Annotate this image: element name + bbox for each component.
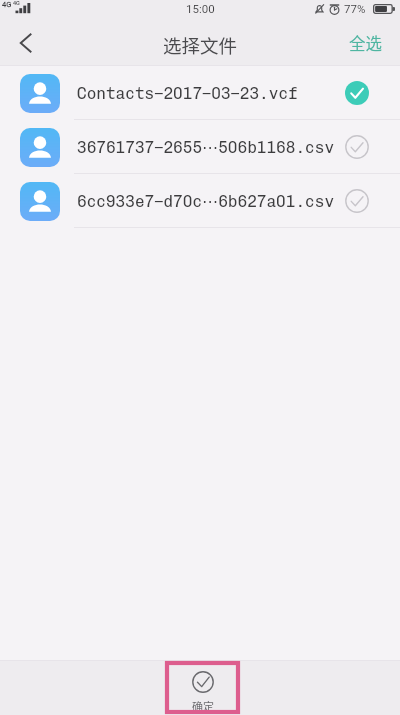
button[interactable]: Contacts‒2017‒03‒23.vcf — [0, 66, 400, 120]
staticText: 选择文件 — [163, 32, 238, 59]
staticText: Contacts‒2017‒03‒23.vcf — [77, 82, 339, 104]
button[interactable]: 36761737‒2655⋯506b1168.csv — [0, 120, 400, 174]
staticText: 77% — [344, 2, 366, 15]
button[interactable]: Back — [0, 22, 50, 66]
staticText: 全选 — [349, 31, 382, 55]
button[interactable]: 6cc933e7‒d70c⋯6b627a01.csv — [0, 174, 400, 228]
staticText: 6cc933e7‒d70c⋯6b627a01.csv — [77, 190, 339, 212]
staticText: 36761737‒2655⋯506b1168.csv — [77, 136, 339, 158]
staticText: 4G — [13, 0, 20, 6]
staticText: 15:00 — [186, 2, 215, 15]
button[interactable]: 全选 — [335, 22, 400, 66]
button[interactable]: 确定 — [167, 663, 238, 712]
staticText: 4G — [2, 0, 12, 9]
staticText: 确定 — [192, 698, 214, 712]
